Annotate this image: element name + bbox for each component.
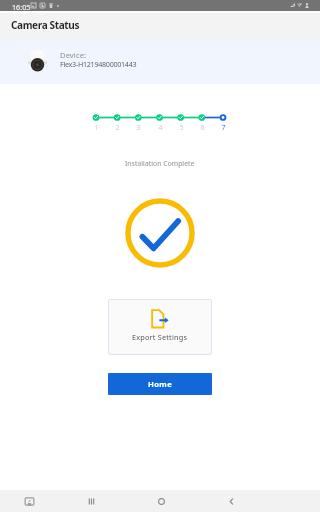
staticText: 1 bbox=[94, 123, 99, 133]
staticText: Export Settings bbox=[132, 332, 188, 342]
staticText: 16:05 bbox=[12, 2, 31, 12]
button[interactable]: Screenshot bbox=[13, 490, 45, 512]
staticText: 5 bbox=[179, 123, 184, 133]
staticText: Flex3-H12194800001443 bbox=[60, 59, 137, 69]
staticText: 6 bbox=[200, 123, 205, 133]
staticText: 3 bbox=[136, 123, 141, 133]
staticText: Home bbox=[148, 379, 173, 389]
staticText: 2 bbox=[115, 123, 120, 133]
button[interactable]: Home bbox=[108, 373, 212, 395]
staticText: 7 bbox=[221, 123, 226, 133]
staticText: 4 bbox=[158, 123, 163, 133]
button[interactable]: Recent apps bbox=[75, 490, 107, 512]
button[interactable]: Export Settings bbox=[108, 299, 212, 355]
staticText: Installation Complete bbox=[125, 159, 195, 168]
button[interactable]: Back bbox=[215, 490, 247, 512]
staticText: Camera Status bbox=[11, 18, 80, 32]
button[interactable]: Home bbox=[145, 490, 177, 512]
staticText: Device: bbox=[60, 50, 87, 60]
